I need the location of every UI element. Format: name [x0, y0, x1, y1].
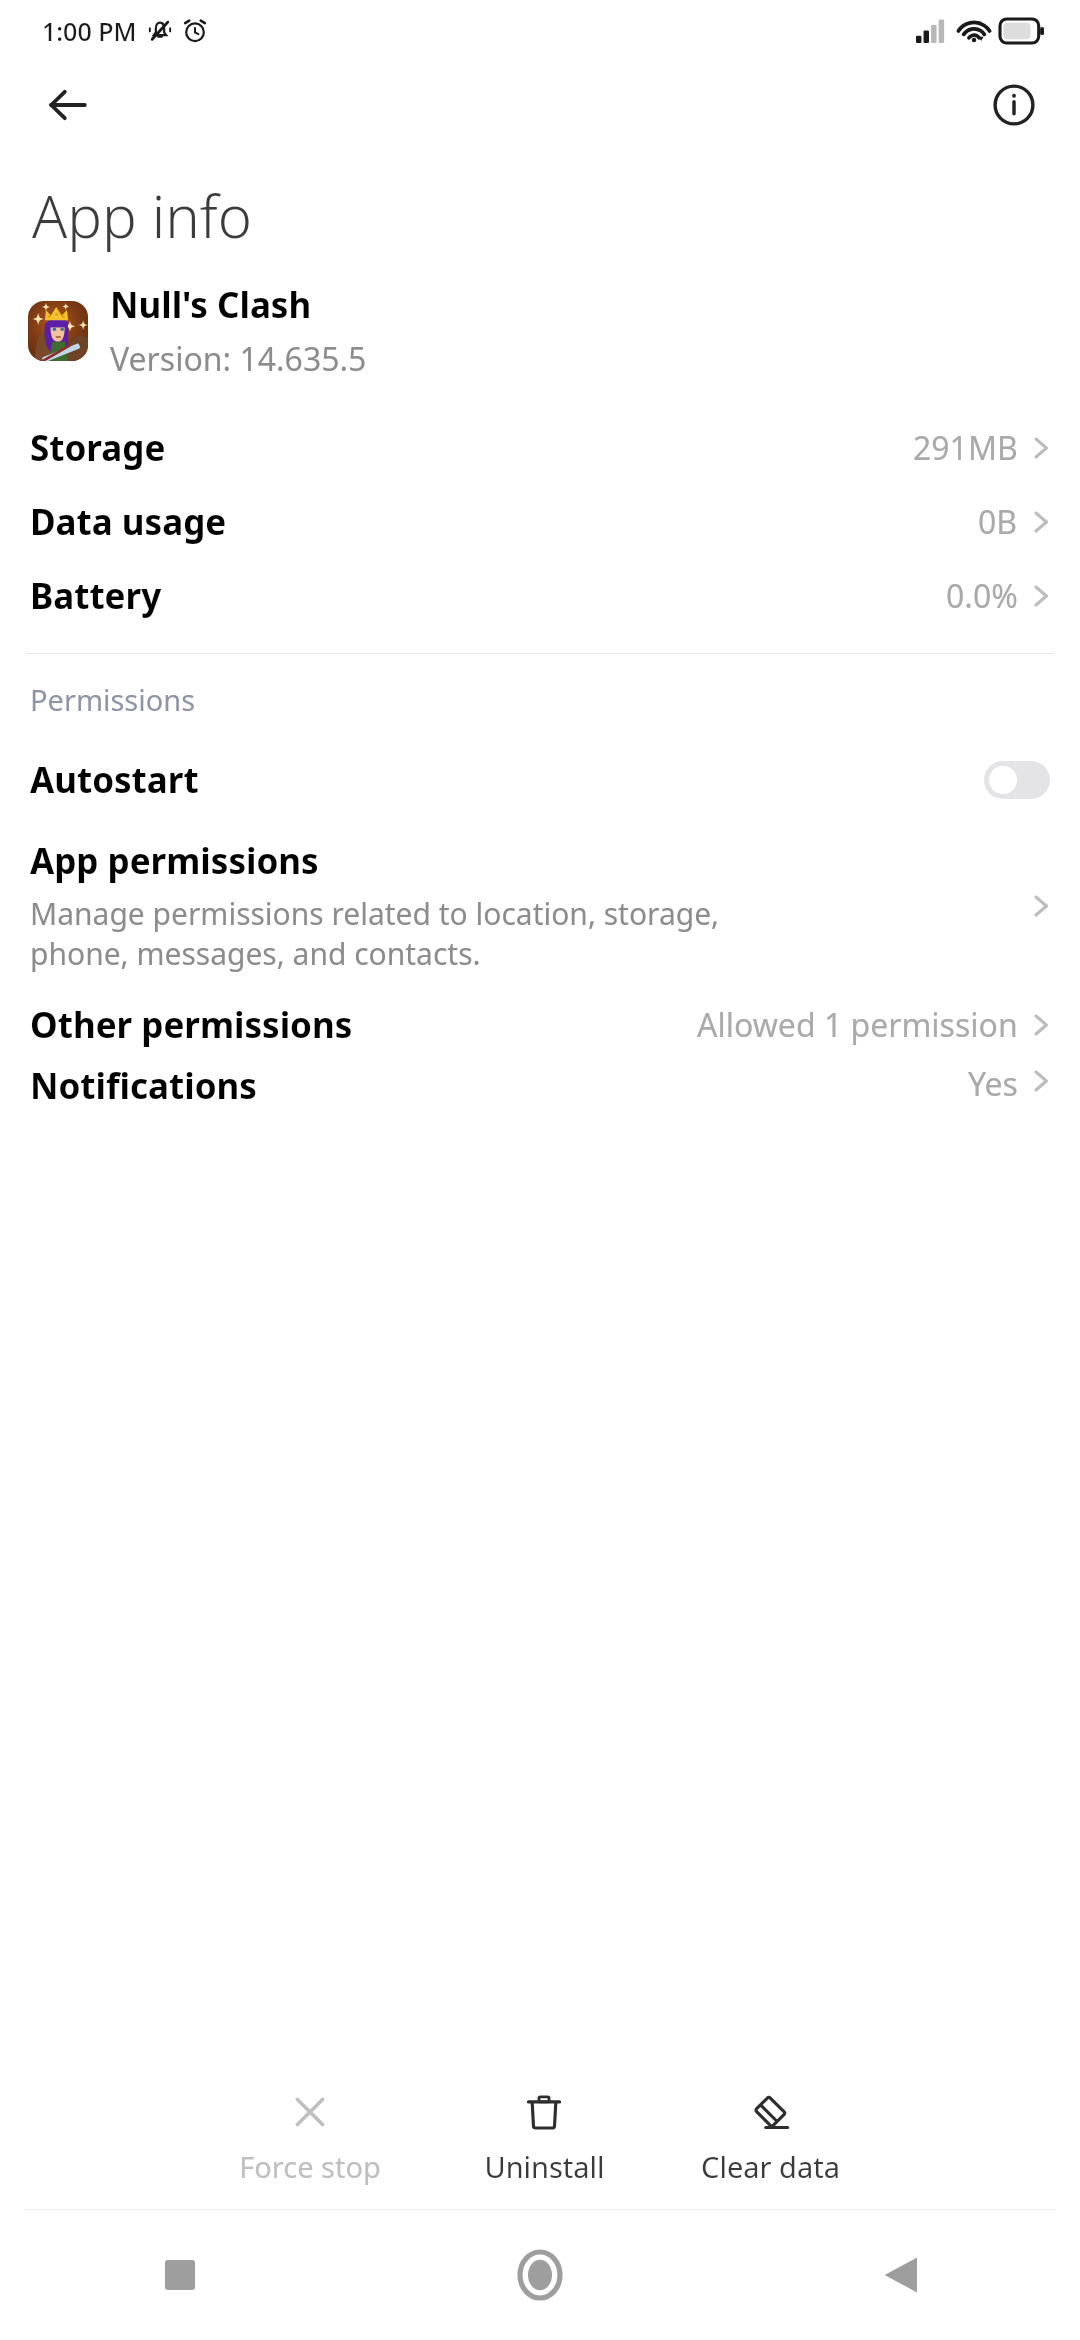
staticText: Yes: [968, 1062, 1018, 1100]
staticText: Permissions: [30, 680, 196, 719]
staticText: Uninstall: [484, 2147, 605, 2186]
staticText: Clear data: [701, 2147, 840, 2186]
button[interactable]: Home: [360, 2210, 720, 2340]
staticText: 291MB: [913, 426, 1018, 470]
button[interactable]: Battery: [0, 559, 1080, 633]
button[interactable]: Storage: [0, 411, 1080, 485]
staticText: Manage permissions related to location, …: [30, 893, 720, 974]
staticText: Other permissions: [30, 1001, 353, 1049]
staticText: 0B: [978, 500, 1018, 544]
button[interactable]: Recents: [0, 2210, 360, 2340]
staticText: App permissions: [30, 837, 319, 885]
staticText: Data usage: [30, 498, 227, 546]
staticText: 1:00 PM: [42, 14, 137, 48]
staticText: Force stop: [239, 2147, 381, 2186]
button[interactable]: Clear data: [685, 2085, 855, 2192]
button[interactable]: Data usage: [0, 485, 1080, 559]
button[interactable]: App permissions: [0, 823, 1080, 988]
button[interactable]: About: [984, 75, 1044, 135]
staticText: Notifications: [30, 1062, 257, 1100]
staticText: Allowed 1 permission: [697, 1003, 1018, 1047]
button[interactable]: Uninstall: [459, 2085, 629, 2192]
button[interactable]: Notifications: [0, 1062, 1080, 1100]
staticText: App info: [32, 176, 252, 255]
staticText: Storage: [30, 424, 166, 472]
staticText: 0.0%: [946, 574, 1018, 618]
staticText: Battery: [30, 572, 162, 620]
staticText: Null's Clash: [110, 281, 312, 329]
button[interactable]: Force stop: [225, 2085, 395, 2192]
button[interactable]: Back: [720, 2210, 1080, 2340]
button[interactable]: Other permissions: [0, 988, 1080, 1062]
staticText: Version: 14.635.5: [110, 337, 367, 381]
button[interactable]: Back: [36, 73, 100, 137]
staticText: Autostart: [30, 756, 199, 804]
button[interactable]: Autostart: [0, 737, 1080, 823]
